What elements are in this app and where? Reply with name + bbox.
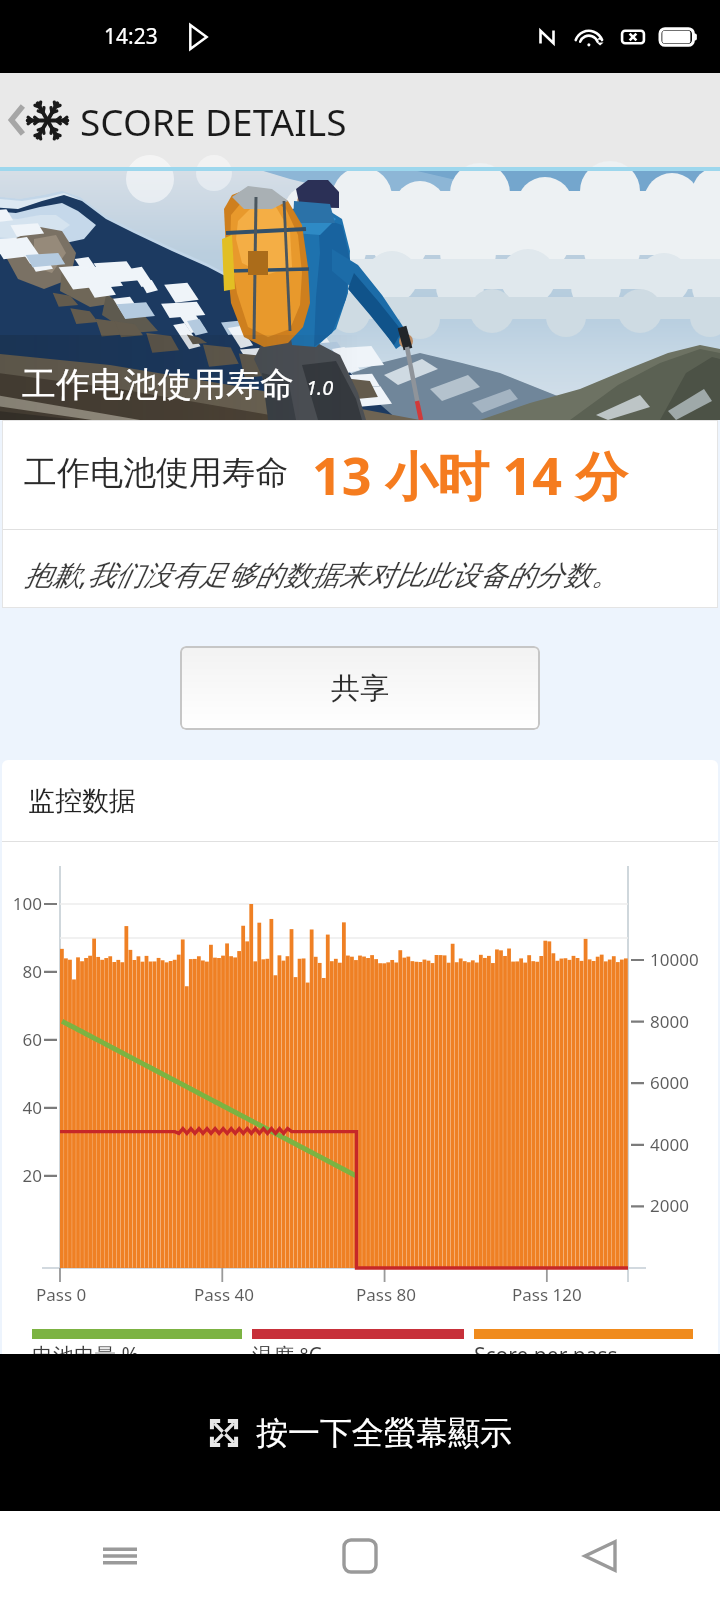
other: Full screen (208, 1417, 240, 1449)
staticText: 1.0 (306, 374, 334, 401)
button[interactable]: Back (0, 90, 34, 150)
staticText: 100 (2, 892, 42, 915)
staticText: Pass 0 (36, 1283, 87, 1306)
button[interactable]: Home (240, 1511, 480, 1600)
staticText: 按一下全螢幕顯示 (256, 1413, 512, 1453)
staticText: SCORE DETAILS (80, 96, 347, 146)
staticText: 40 (2, 1096, 42, 1119)
staticText: 8000 (650, 1010, 689, 1033)
staticText: 10000 (650, 948, 699, 971)
staticText: 60 (2, 1028, 42, 1051)
staticText: 抱歉,我们没有足够的数据来对比此设备的分数。 (24, 555, 620, 593)
staticText: 2000 (650, 1194, 689, 1217)
button[interactable]: 共享 (180, 646, 540, 730)
staticText: 监控数据 (28, 784, 136, 818)
staticText: Score per pass (474, 1341, 618, 1354)
staticText: 14:23 (104, 22, 158, 51)
staticText: 80 (2, 960, 42, 983)
staticText: 工作电池使用寿命 (22, 363, 294, 406)
button[interactable]: Full screen (0, 1354, 720, 1511)
staticText: 4000 (650, 1133, 689, 1156)
button[interactable]: Recents (0, 1511, 240, 1600)
staticText: Pass 80 (356, 1283, 416, 1306)
staticText: 20 (2, 1164, 42, 1187)
staticText: 温度 °C (252, 1341, 322, 1354)
staticText: 电池电量 % (32, 1341, 139, 1354)
button[interactable]: Back (480, 1511, 720, 1600)
staticText: 6000 (650, 1071, 689, 1094)
staticText: 13 小时 14 分 (312, 439, 628, 510)
staticText: 工作电池使用寿命 (24, 452, 288, 494)
staticText: Pass 120 (512, 1283, 582, 1306)
staticText: Pass 40 (194, 1283, 254, 1306)
staticText: 共享 (331, 670, 389, 707)
